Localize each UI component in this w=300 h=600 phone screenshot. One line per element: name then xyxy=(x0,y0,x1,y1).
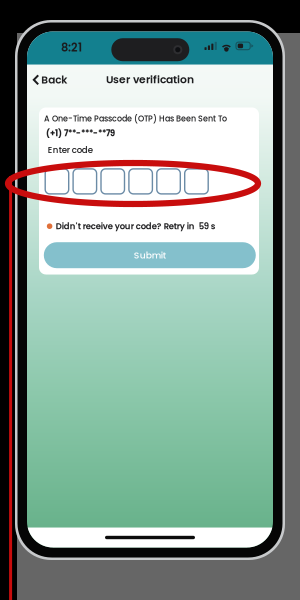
staticText: Submit xyxy=(134,249,166,262)
button[interactable]: Back xyxy=(27,66,74,93)
staticText: Enter code xyxy=(48,144,93,156)
staticText: (+1) 7**-***-**79 xyxy=(46,127,115,139)
staticText: Back xyxy=(41,72,67,87)
staticText: 8:21 xyxy=(61,39,82,55)
staticText: A One-Time Passcode (OTP) Has Been Sent … xyxy=(44,113,227,124)
button[interactable]: Code digit xyxy=(185,169,208,194)
button[interactable]: Code digit xyxy=(45,169,69,194)
button[interactable]: Code digit xyxy=(157,169,180,194)
button[interactable]: Submit xyxy=(44,242,256,268)
staticText: Didn't receive your code? Retry in 59 s xyxy=(56,220,216,232)
button[interactable]: Code digit xyxy=(73,169,97,194)
staticText: User verification xyxy=(106,72,194,87)
button[interactable]: Code digit xyxy=(129,169,152,194)
button[interactable]: Code digit xyxy=(101,169,124,194)
